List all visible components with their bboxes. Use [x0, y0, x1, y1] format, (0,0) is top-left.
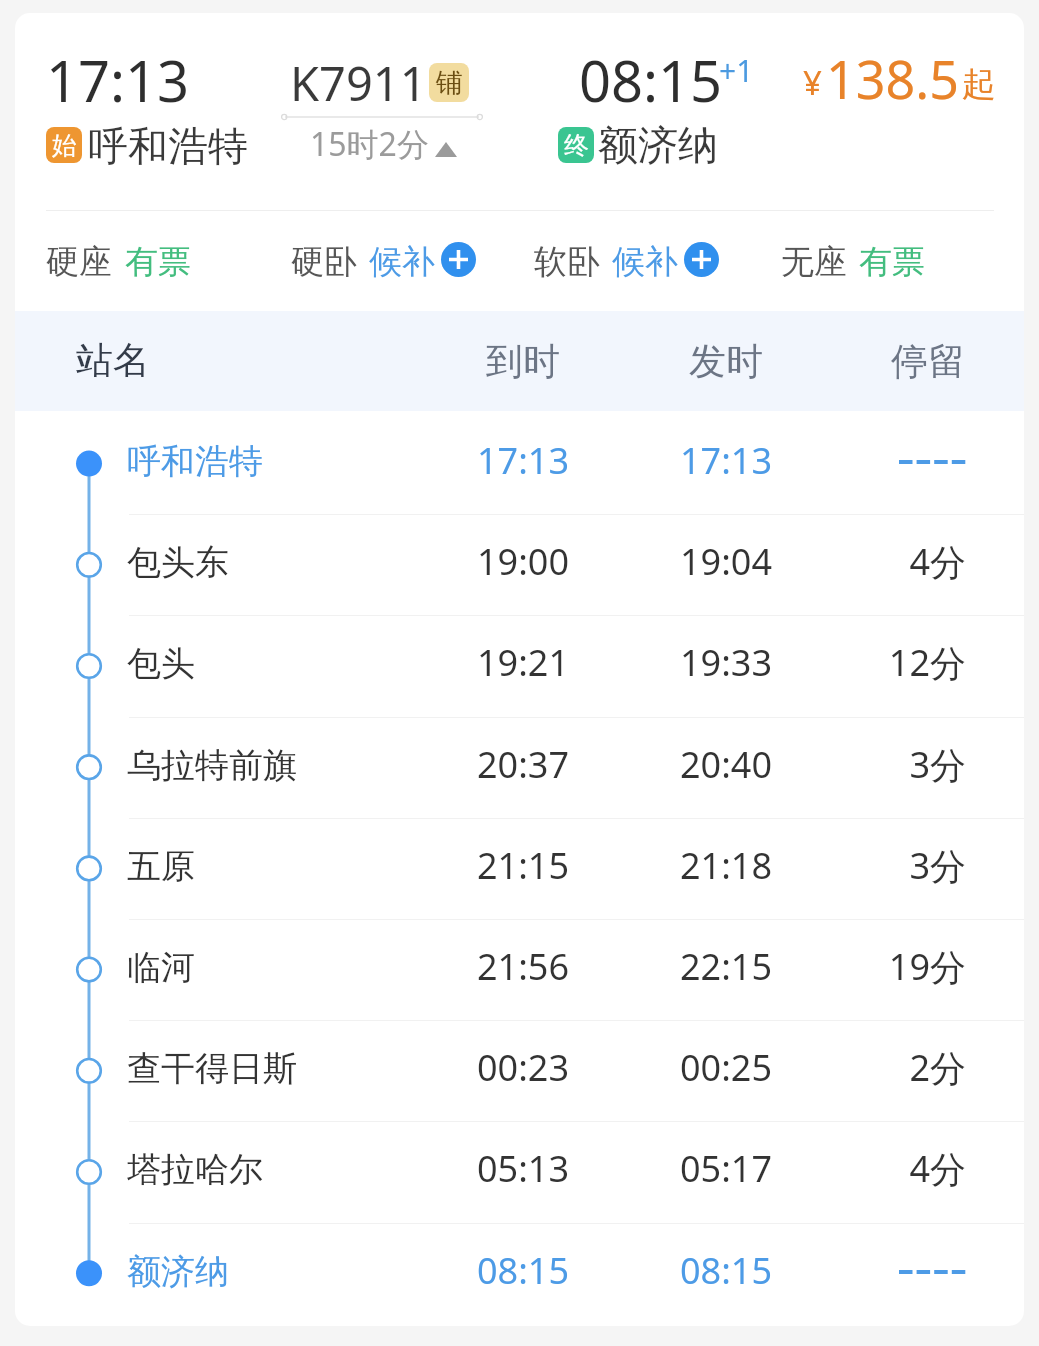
staticText: 起 — [962, 63, 996, 106]
staticText: 05:13 — [423, 1144, 623, 1193]
staticText: 终 — [564, 130, 589, 161]
button[interactable]: 额济纳 — [15, 1223, 1024, 1324]
staticText: 05:17 — [626, 1144, 826, 1193]
staticText: 20:37 — [423, 740, 623, 789]
staticText: 发时 — [626, 338, 826, 385]
button[interactable]: 塔拉哈尔 — [15, 1121, 1024, 1222]
staticText: 硬卧 — [291, 241, 357, 283]
staticText: 17:13 — [46, 42, 190, 118]
staticText: 有票 — [125, 241, 191, 283]
button[interactable]: 乌拉特前旗 — [15, 717, 1024, 818]
staticText: 3分 — [766, 841, 966, 890]
button[interactable]: 呼和浩特 — [15, 413, 1024, 514]
staticText: 额济纳 — [598, 120, 718, 170]
staticText: 00:25 — [626, 1043, 826, 1092]
staticText: 候补 — [612, 241, 678, 283]
staticText: 22:15 — [626, 942, 826, 991]
button[interactable]: 硬座 — [38, 236, 203, 284]
button[interactable]: 硬卧 — [283, 236, 484, 284]
staticText: 19:33 — [626, 638, 826, 687]
staticText: 17:13 — [626, 436, 826, 485]
staticText: 呼和浩特 — [127, 440, 263, 483]
staticText: 20:40 — [626, 740, 826, 789]
staticText: 呼和浩特 — [88, 121, 248, 171]
staticText: 临河 — [127, 946, 195, 989]
button[interactable]: 收起经停信息 — [302, 118, 466, 164]
staticText: 19:04 — [626, 537, 826, 586]
staticText: 包头东 — [127, 541, 229, 584]
staticText: 硬座 — [46, 241, 112, 283]
staticText: 08:15 — [579, 42, 723, 118]
staticText: +1 — [719, 50, 754, 91]
staticText: 08:15 — [423, 1246, 623, 1295]
staticText: 铺 — [436, 66, 463, 100]
button[interactable]: 包头 — [15, 615, 1024, 716]
staticText: 塔拉哈尔 — [127, 1148, 263, 1191]
staticText: 08:15 — [626, 1246, 826, 1295]
staticText: 00:23 — [423, 1043, 623, 1092]
staticText: 19:00 — [423, 537, 623, 586]
button[interactable]: ¥ — [795, 50, 999, 108]
staticText: 4分 — [766, 537, 966, 586]
button[interactable]: 查干得日斯 — [15, 1020, 1024, 1121]
staticText: 额济纳 — [127, 1250, 229, 1293]
staticText: 无座 — [781, 241, 847, 283]
staticText: 15时2分 — [310, 122, 429, 166]
staticText: 17:13 — [423, 436, 623, 485]
button[interactable]: 临河 — [15, 919, 1024, 1020]
staticText: 21:18 — [626, 841, 826, 890]
staticText: 138.5 — [826, 43, 959, 101]
staticText: 有票 — [859, 241, 925, 283]
staticText: ¥ — [803, 60, 822, 105]
staticText: 站名 — [76, 337, 150, 384]
button[interactable]: 软卧 — [526, 236, 727, 284]
staticText: 乌拉特前旗 — [127, 744, 297, 787]
staticText: 21:56 — [423, 942, 623, 991]
staticText: 始 — [52, 130, 77, 161]
button[interactable]: 五原 — [15, 818, 1024, 919]
staticText: 停留 — [765, 338, 965, 385]
staticText: 21:15 — [423, 841, 623, 890]
staticText: 3分 — [766, 740, 966, 789]
staticText: 候补 — [369, 241, 435, 283]
staticText: 12分 — [766, 638, 966, 687]
staticText: K7911 — [290, 51, 427, 115]
staticText: 包头 — [127, 642, 195, 685]
staticText: 查干得日斯 — [127, 1047, 297, 1090]
button[interactable]: 无座 — [773, 236, 937, 284]
staticText: 19分 — [766, 942, 966, 991]
staticText: 五原 — [127, 845, 195, 888]
button[interactable]: 包头东 — [15, 514, 1024, 615]
staticText: 2分 — [766, 1043, 966, 1092]
staticText: 19:21 — [423, 638, 623, 687]
staticText: 4分 — [766, 1144, 966, 1193]
staticText: 到时 — [423, 338, 623, 385]
staticText: 软卧 — [534, 241, 600, 283]
